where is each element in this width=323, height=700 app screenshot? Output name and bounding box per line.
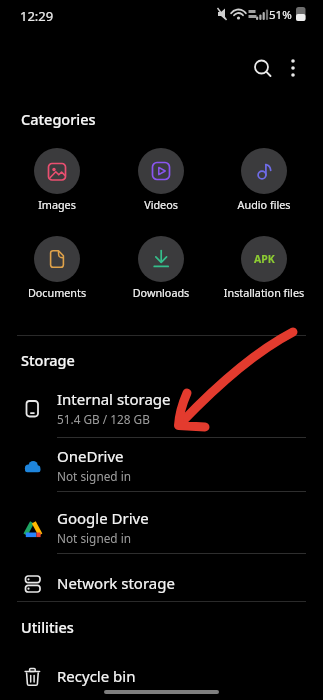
staticText: Downloads [106, 285, 216, 300]
button[interactable]: Internal storage [0, 383, 323, 433]
staticText: Google Drive [57, 508, 149, 528]
staticText: Categories [21, 109, 96, 129]
staticText: APK [254, 252, 275, 266]
staticText: Network storage [57, 573, 175, 593]
staticText: Images [2, 197, 112, 212]
staticText: Documents [2, 285, 112, 300]
button[interactable]: Network storage [0, 565, 323, 601]
staticText: Internal storage [57, 389, 171, 409]
staticText: 12:29 [20, 7, 54, 25]
button[interactable]: Google Drive [0, 505, 323, 549]
staticText: Recycle bin [57, 666, 136, 686]
staticText: 51% [269, 7, 292, 23]
staticText: OneDrive [57, 446, 124, 466]
button[interactable]: Recycle bin [0, 658, 323, 694]
button[interactable]: Images [2, 148, 112, 212]
staticText: Utilities [21, 617, 74, 637]
staticText: Videos [106, 197, 216, 212]
button[interactable] [247, 54, 279, 86]
button[interactable]: Videos [106, 148, 216, 212]
button[interactable]: APK [209, 236, 319, 300]
button[interactable]: Audio files [209, 148, 319, 212]
staticText: 51.4 GB / 128 GB [57, 411, 150, 427]
button[interactable]: Documents [2, 236, 112, 300]
button[interactable]: OneDrive [0, 443, 323, 487]
button[interactable] [281, 54, 307, 80]
button[interactable]: Downloads [106, 236, 216, 300]
staticText: Not signed in [57, 468, 131, 484]
staticText: Storage [21, 350, 75, 370]
staticText: Audio files [209, 197, 319, 212]
staticText: Not signed in [57, 530, 131, 546]
staticText: Installation files [209, 285, 319, 300]
